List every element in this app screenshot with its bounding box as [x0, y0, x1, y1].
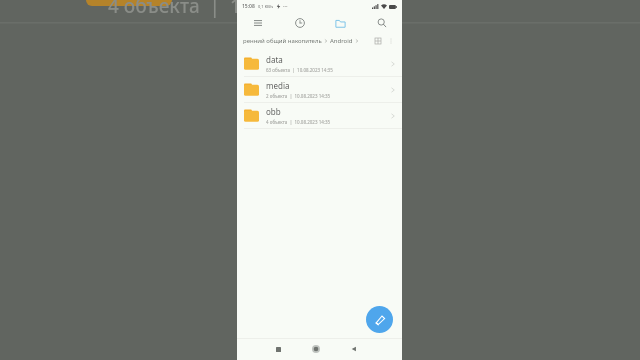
- button[interactable]: Create: [366, 306, 393, 333]
- staticText: Android: [330, 37, 353, 45]
- staticText: data: [266, 54, 283, 65]
- button[interactable]: media: [237, 77, 402, 102]
- button[interactable]: Back: [335, 338, 373, 360]
- staticText: 15:08: [242, 3, 255, 10]
- button[interactable]: obb: [237, 103, 402, 128]
- button[interactable]: data: [237, 51, 402, 76]
- button[interactable]: Files: [320, 13, 361, 33]
- staticText: 4 объекта | 10.: [108, 0, 257, 19]
- staticText: 2 объекта | 10.08.2023 14:35: [266, 93, 331, 99]
- staticText: 63 объекта | 10.08.2023 14:35: [266, 67, 333, 73]
- button[interactable]: Recent: [279, 13, 320, 33]
- staticText: obb: [266, 106, 281, 117]
- button[interactable]: Recents: [259, 338, 297, 360]
- staticText: media: [266, 80, 290, 91]
- button[interactable]: Home: [297, 338, 335, 360]
- button[interactable]: Menu: [237, 13, 279, 33]
- staticText: •••: [283, 4, 288, 9]
- button[interactable]: Search: [361, 13, 402, 33]
- staticText: 0,1 KB/s: [258, 4, 274, 9]
- staticText: ренний общий накопитель: [243, 37, 322, 45]
- button[interactable]: Grid view: [372, 35, 384, 47]
- staticText: 4 объекта | 10.08.2023 14:35: [266, 119, 331, 125]
